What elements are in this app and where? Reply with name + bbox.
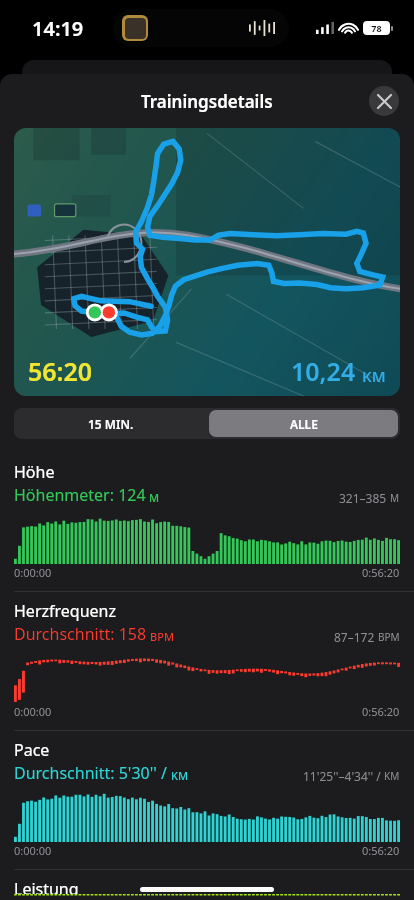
staticText: 0:56:20 [362, 565, 400, 580]
button[interactable]: Schließen [369, 86, 399, 116]
staticText: ALLE [290, 416, 318, 432]
staticText: BPM [378, 630, 400, 644]
staticText: 78 [371, 22, 382, 34]
staticText: Höhenmeter: 124 [14, 484, 146, 506]
staticText: 0:00:00 [14, 565, 52, 580]
staticText: 0:00:00 [14, 843, 52, 858]
staticText: Herzfrequenz [14, 600, 116, 622]
button[interactable]: 15 MIN. [14, 408, 207, 439]
staticText: 0:56:20 [362, 843, 400, 858]
staticText: Höhe [14, 461, 55, 483]
staticText: 56:20 [28, 354, 93, 388]
staticText: M [149, 490, 160, 505]
staticText: 11'25''–4'34'' / [303, 768, 381, 784]
staticText: M [390, 491, 400, 505]
staticText: Leistung [14, 878, 79, 894]
staticText: 14:19 [32, 15, 84, 42]
staticText: KM [362, 366, 386, 386]
staticText: 10,24 [291, 354, 356, 388]
staticText: 15 MIN. [88, 416, 134, 432]
staticText: KM [384, 769, 400, 783]
staticText: 87–172 [334, 629, 375, 645]
staticText: Durchschnitt: 158 [14, 623, 147, 645]
staticText: Pace [14, 739, 50, 761]
button[interactable]: 56:20 [14, 128, 400, 396]
staticText: Durchschnitt: 5'30'' / [14, 762, 168, 784]
staticText: KM [171, 768, 189, 783]
staticText: 0:56:20 [362, 704, 400, 719]
button[interactable]: ALLE [209, 410, 398, 437]
staticText: BPM [150, 629, 175, 644]
staticText: 0:00:00 [14, 704, 52, 719]
staticText: 321–385 [339, 490, 387, 506]
staticText: Trainingsdetails [141, 90, 273, 113]
